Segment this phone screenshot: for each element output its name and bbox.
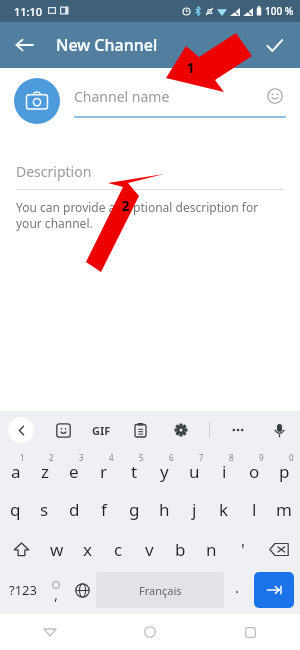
staticText: o <box>249 460 260 483</box>
button[interactable]: c <box>103 529 134 569</box>
staticText: 2 <box>121 196 130 215</box>
button[interactable]: p <box>269 449 299 489</box>
staticText: GIF <box>92 423 111 438</box>
button[interactable]: Change language <box>69 572 96 608</box>
button[interactable]: d <box>59 489 89 529</box>
staticText: a <box>11 460 21 483</box>
button[interactable]: Clipboard <box>127 417 153 443</box>
staticText: x <box>83 538 92 561</box>
button[interactable]: Set channel photo <box>14 78 60 124</box>
button[interactable]: t <box>119 449 149 489</box>
staticText: ' <box>241 538 245 561</box>
staticText: , <box>54 584 59 604</box>
staticText: z <box>41 460 49 483</box>
staticText: b <box>175 538 186 561</box>
button[interactable]: Home <box>100 614 200 650</box>
staticText: n <box>206 538 217 561</box>
staticText: f <box>101 498 107 521</box>
button[interactable]: y <box>149 449 179 489</box>
staticText: m <box>276 498 292 521</box>
button[interactable]: Emoji <box>264 85 286 107</box>
button[interactable]: GIF <box>92 423 111 438</box>
button[interactable]: Done <box>254 25 294 65</box>
staticText: e <box>69 460 79 483</box>
staticText: t <box>131 460 138 483</box>
button[interactable]: a <box>1 449 30 489</box>
button[interactable]: x <box>72 529 103 569</box>
button[interactable]: Channel name <box>74 87 264 106</box>
staticText: 0 <box>289 452 294 463</box>
staticText: k <box>219 498 229 521</box>
staticText: i <box>222 460 227 483</box>
button[interactable]: Enter <box>254 572 294 608</box>
staticText: h <box>159 498 170 521</box>
button[interactable]: Shift <box>1 529 41 569</box>
button[interactable]: Back <box>4 25 44 65</box>
button[interactable]: n <box>196 529 227 569</box>
button[interactable]: Description <box>16 162 92 181</box>
button[interactable]: Recent apps <box>200 614 300 650</box>
button[interactable]: u <box>179 449 209 489</box>
button[interactable]: h <box>149 489 179 529</box>
staticText: u <box>189 460 200 483</box>
button[interactable]: Français <box>96 572 224 608</box>
button[interactable]: Stickers <box>50 417 76 443</box>
staticText: . <box>235 577 240 597</box>
button[interactable]: More options <box>225 417 251 443</box>
button[interactable]: Backspace <box>258 529 299 569</box>
button[interactable]: ' <box>227 529 258 569</box>
staticText: d <box>69 498 80 521</box>
button[interactable]: w <box>41 529 72 569</box>
button[interactable]: Voice input <box>266 417 292 443</box>
staticText: You can provide an optional description … <box>16 199 284 231</box>
button[interactable]: l <box>239 489 269 529</box>
staticText: g <box>129 498 140 521</box>
button[interactable]: r <box>89 449 119 489</box>
staticText: r <box>100 460 108 483</box>
staticText: p <box>279 460 290 483</box>
button[interactable]: Expand toolbar <box>8 417 34 443</box>
button[interactable]: . <box>224 572 251 608</box>
button[interactable]: s <box>30 489 59 529</box>
button[interactable]: e <box>59 449 89 489</box>
button[interactable]: i <box>209 449 239 489</box>
staticText: New Channel <box>56 34 158 56</box>
staticText: 9 <box>259 452 264 463</box>
button[interactable]: Settings <box>168 417 194 443</box>
staticText: w <box>50 538 64 561</box>
button[interactable]: z <box>30 449 59 489</box>
staticText: v <box>145 538 154 561</box>
staticText: j <box>192 498 197 521</box>
staticText: q <box>10 498 21 521</box>
staticText: 11:10 <box>14 4 43 19</box>
staticText: 100 % <box>265 4 294 18</box>
staticText: 1 <box>20 452 25 463</box>
button[interactable]: ?123 <box>3 572 43 608</box>
staticText: 6 <box>169 452 174 463</box>
button[interactable]: q <box>1 489 30 529</box>
button[interactable]: Back <box>0 614 100 650</box>
staticText: s <box>40 498 49 521</box>
staticText: ?123 <box>9 581 37 599</box>
button[interactable]: m <box>269 489 299 529</box>
button[interactable]: o <box>239 449 269 489</box>
staticText: 2 <box>49 452 54 463</box>
staticText: 5 <box>139 452 144 463</box>
staticText: y <box>160 460 169 483</box>
staticText: c <box>114 538 123 561</box>
staticText: 3 <box>79 452 84 463</box>
staticText: Français <box>139 583 182 598</box>
staticText: 4 <box>109 452 114 463</box>
staticText: 8 <box>229 452 234 463</box>
button[interactable]: j <box>179 489 209 529</box>
staticText: l <box>252 498 257 521</box>
button[interactable]: b <box>165 529 196 569</box>
staticText: 1 <box>186 58 195 77</box>
button[interactable]: k <box>209 489 239 529</box>
button[interactable]: f <box>89 489 119 529</box>
button[interactable]: Comma and emoji <box>43 572 69 608</box>
button[interactable]: g <box>119 489 149 529</box>
staticText: 7 <box>199 452 204 463</box>
button[interactable]: v <box>134 529 165 569</box>
